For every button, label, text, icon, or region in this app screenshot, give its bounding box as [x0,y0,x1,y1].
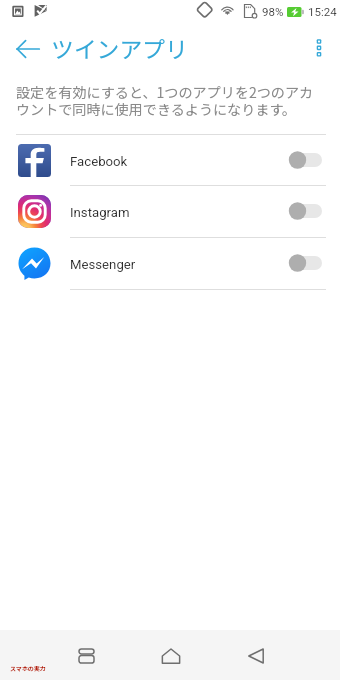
button[interactable]: Toggle [288,201,322,221]
staticText: Messenger [70,257,136,272]
staticText: 15:24 [308,5,337,18]
button[interactable]: Toggle [288,253,322,273]
button[interactable]: Messenger [0,237,340,289]
staticText: ツインアプリ [51,32,188,65]
button[interactable]: Toggle [288,150,322,170]
staticText: Facebook [70,154,128,169]
button[interactable]: Home [142,631,199,680]
button[interactable]: Back [227,631,284,680]
button[interactable]: Back [10,31,46,67]
button[interactable]: Recents [58,631,114,680]
button[interactable]: More options [302,30,336,64]
button[interactable]: Instagram [0,185,340,237]
button[interactable]: Facebook [0,134,340,186]
staticText: Instagram [70,205,130,220]
staticText: スマホの実力 [10,664,46,673]
staticText: 設定を有効にすると、1つのアプリを2つのアカウントで同時に使用できるようになりま… [16,82,314,119]
staticText: 98% [262,5,284,18]
